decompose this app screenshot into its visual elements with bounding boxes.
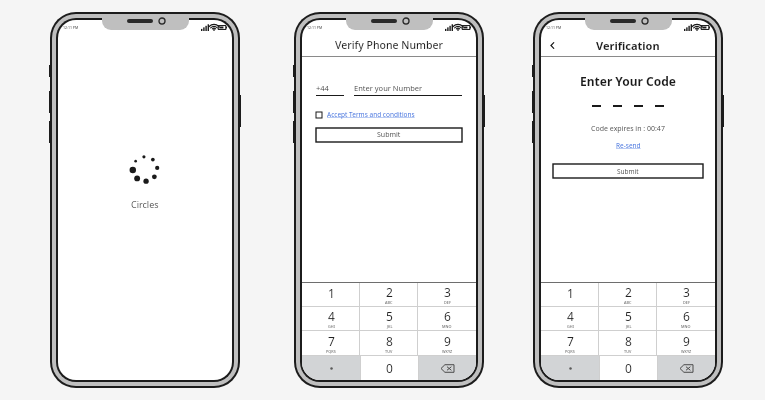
staticText: 9 (683, 333, 690, 349)
button[interactable]: 8 (599, 331, 657, 355)
staticText: 12:11 PM (307, 25, 323, 30)
button[interactable]: Submit (553, 164, 703, 178)
button[interactable]: 1 (541, 283, 599, 306)
button[interactable]: 9 (418, 331, 476, 355)
staticText: MNO (681, 324, 691, 329)
staticText: PQRS (565, 349, 575, 354)
button[interactable]: Backspace (658, 356, 715, 380)
button[interactable]: 4 (541, 307, 599, 330)
staticText: 6 (683, 308, 690, 324)
staticText: Circles (131, 198, 159, 210)
staticText: TUV (385, 349, 393, 354)
button[interactable]: 2 (360, 283, 418, 306)
staticText: 2 (386, 284, 393, 300)
button[interactable]: 8 (360, 331, 418, 355)
staticText: 4 (567, 308, 574, 324)
staticText: Accept Terms and conditions (327, 110, 415, 119)
staticText: 12:11 PM (63, 25, 79, 30)
staticText: Enter your Number (354, 83, 423, 93)
button[interactable]: 3 (657, 283, 715, 306)
staticText: 0 (625, 360, 632, 376)
button[interactable]: Enter your Number (354, 83, 462, 96)
staticText: 1 (567, 285, 574, 301)
button[interactable]: 7 (541, 331, 599, 355)
button[interactable]: 5 (599, 307, 657, 330)
staticText: JKL (387, 324, 393, 329)
button[interactable]: 3 (418, 283, 476, 306)
staticText: 4 (328, 308, 335, 324)
button[interactable] (541, 356, 599, 380)
button[interactable]: 2 (599, 283, 657, 306)
staticText: 7 (328, 333, 335, 349)
staticText: Enter Your Code (541, 73, 715, 89)
staticText: 9 (444, 333, 451, 349)
staticText: 8 (386, 333, 393, 349)
button[interactable]: 7 (302, 331, 360, 355)
staticText: WXYZ (681, 349, 692, 354)
staticText: 8 (625, 333, 632, 349)
staticText: 7 (567, 333, 574, 349)
button[interactable]: Back (546, 39, 558, 51)
staticText: 5 (625, 308, 632, 324)
staticText: DEF (683, 300, 690, 305)
staticText: PQRS (326, 349, 336, 354)
button[interactable]: 5 (360, 307, 418, 330)
staticText: Verification (596, 38, 660, 53)
staticText: Code expires in : 00:47 (541, 124, 715, 134)
button[interactable]: Submit (316, 128, 462, 142)
staticText: 3 (444, 284, 451, 300)
button[interactable]: Backspace (419, 356, 476, 380)
staticText: DEF (444, 300, 451, 305)
staticText: 5 (386, 308, 393, 324)
staticText: Verify Phone Number (335, 38, 443, 52)
button[interactable]: Accept Terms and conditions (316, 110, 462, 119)
staticText: +44 (316, 83, 329, 93)
staticText: 6 (444, 308, 451, 324)
button[interactable]: 0 (600, 356, 657, 380)
staticText: WXYZ (442, 349, 453, 354)
button[interactable]: 6 (418, 307, 476, 330)
staticText: ABC (385, 300, 393, 305)
staticText: JKL (626, 324, 632, 329)
staticText: Submit (377, 130, 401, 140)
staticText: 12:11 PM (546, 25, 562, 30)
staticText: 0 (386, 360, 393, 376)
staticText: 1 (328, 285, 335, 301)
staticText: ABC (624, 300, 632, 305)
staticText: 2 (625, 284, 632, 300)
staticText: TUV (624, 349, 632, 354)
button[interactable]: 6 (657, 307, 715, 330)
staticText: Submit (617, 167, 639, 176)
button[interactable] (302, 356, 360, 380)
button[interactable]: 9 (657, 331, 715, 355)
button[interactable]: 1 (302, 283, 360, 306)
button[interactable]: 0 (361, 356, 418, 380)
staticText: MNO (442, 324, 452, 329)
staticText: 3 (683, 284, 690, 300)
button[interactable]: Re-send (616, 141, 641, 150)
staticText: GHI (567, 324, 574, 329)
button[interactable]: 4 (302, 307, 360, 330)
staticText: GHI (328, 324, 335, 329)
